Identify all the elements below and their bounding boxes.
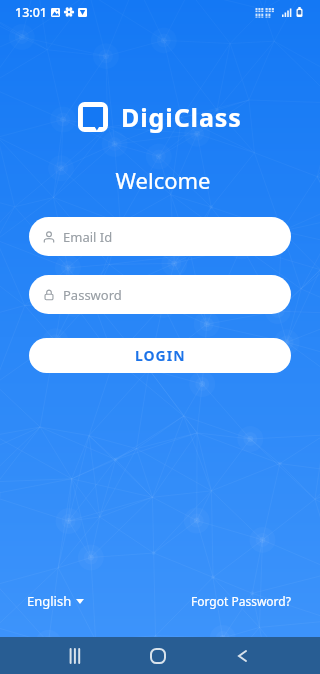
- button[interactable]: Email Id: [29, 217, 291, 256]
- staticText: Password: [63, 286, 122, 304]
- staticText: English: [27, 592, 72, 610]
- staticText: DigiClass: [121, 100, 242, 134]
- button[interactable]: Back: [220, 637, 264, 674]
- staticText: LOGIN: [135, 346, 186, 365]
- staticText: Email Id: [63, 228, 113, 246]
- button[interactable]: English: [23, 589, 88, 613]
- button[interactable]: LOGIN: [29, 338, 291, 373]
- button[interactable]: Password: [29, 275, 291, 314]
- staticText: 13:01: [15, 4, 48, 21]
- staticText: Forgot Password?: [191, 593, 291, 609]
- button[interactable]: Home: [136, 637, 180, 674]
- staticText: Welcome: [3, 165, 320, 195]
- button[interactable]: Forgot Password?: [187, 590, 295, 612]
- button[interactable]: Recent apps: [52, 637, 96, 674]
